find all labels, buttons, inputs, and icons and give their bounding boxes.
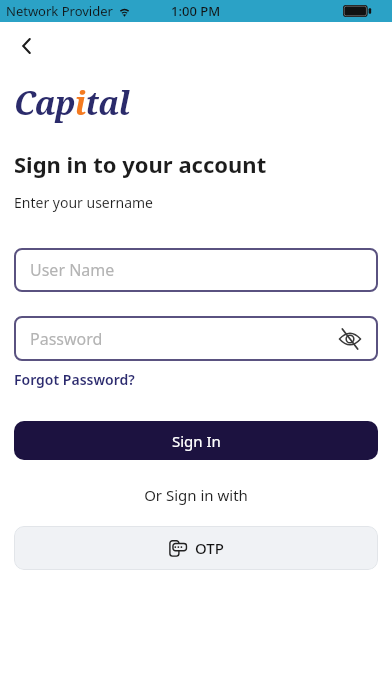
- button[interactable]: User Name: [14, 248, 378, 292]
- staticText: Sign In: [172, 431, 221, 451]
- staticText: Sign in to your account: [14, 149, 267, 179]
- staticText: Password: [30, 328, 103, 350]
- staticText: Enter your username: [14, 193, 154, 212]
- staticText: Or Sign in with: [0, 485, 392, 505]
- staticText: OTP: [195, 538, 224, 558]
- button[interactable]: Sign In: [14, 421, 378, 460]
- button[interactable]: Forgot Password?: [14, 370, 135, 389]
- staticText: 1:00 PM: [171, 2, 221, 20]
- staticText: User Name: [30, 259, 115, 281]
- button[interactable]: [12, 32, 40, 60]
- staticText: Network Provider: [6, 2, 113, 20]
- button[interactable]: OTP: [14, 526, 378, 570]
- staticText: Capital: [14, 81, 130, 125]
- button[interactable]: Password: [14, 316, 378, 361]
